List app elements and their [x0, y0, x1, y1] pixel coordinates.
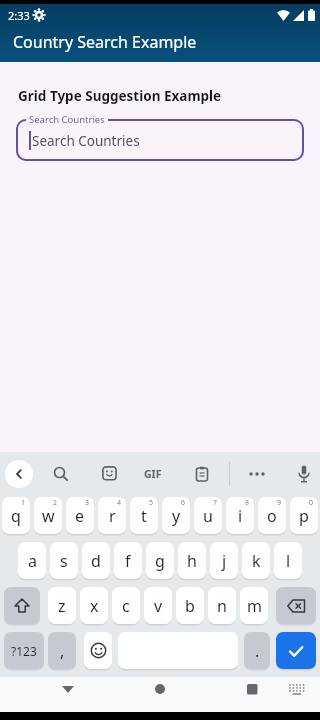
staticText: 0	[309, 498, 314, 508]
staticText: v	[154, 595, 163, 617]
staticText: f	[125, 550, 131, 572]
staticText: t	[141, 505, 147, 527]
staticText: 4	[117, 498, 122, 508]
button[interactable]: k	[242, 542, 270, 579]
staticText: ?123	[11, 643, 37, 659]
staticText: c	[122, 595, 130, 617]
staticText: h	[187, 550, 197, 572]
button[interactable]: o	[258, 497, 286, 534]
staticText: 3	[85, 498, 90, 508]
staticText: u	[203, 505, 213, 527]
staticText: y	[172, 505, 181, 527]
staticText: 1	[21, 498, 26, 508]
button[interactable]: y	[162, 497, 190, 534]
staticText: Search Countries	[32, 132, 140, 150]
button[interactable]: j	[210, 542, 238, 579]
button[interactable]	[118, 632, 238, 669]
button[interactable]: w	[34, 497, 62, 534]
button[interactable]	[84, 632, 112, 669]
staticText: b	[185, 595, 195, 617]
button[interactable]: r	[98, 497, 126, 534]
staticText: l	[286, 550, 291, 572]
button[interactable]: x	[80, 587, 108, 624]
staticText: r	[109, 505, 116, 527]
button[interactable]: n	[208, 587, 236, 624]
staticText: Grid Type Suggestion Example	[18, 87, 222, 105]
staticText: g	[155, 550, 165, 572]
button[interactable]: s	[50, 542, 78, 579]
staticText: m	[247, 595, 262, 617]
button[interactable]	[276, 587, 316, 624]
button[interactable]: q	[2, 497, 30, 534]
button[interactable]: v	[144, 587, 172, 624]
button[interactable]: t	[130, 497, 158, 534]
button[interactable]	[153, 682, 167, 696]
button[interactable]: ,	[48, 632, 76, 669]
button[interactable]	[245, 682, 259, 696]
button[interactable]: g	[146, 542, 174, 579]
staticText: ,	[60, 640, 65, 662]
staticText: 8	[245, 498, 250, 508]
staticText: a	[28, 550, 37, 572]
staticText: z	[58, 595, 66, 617]
staticText: j	[222, 550, 227, 572]
button[interactable]	[53, 466, 69, 482]
staticText: i	[238, 505, 243, 527]
staticText: o	[267, 505, 277, 527]
button[interactable]	[249, 466, 265, 482]
button[interactable]: i	[226, 497, 254, 534]
staticText: 7	[213, 498, 218, 508]
button[interactable]: b	[176, 587, 204, 624]
staticText: 2	[53, 498, 58, 508]
button[interactable]: e	[66, 497, 94, 534]
button[interactable]: p	[290, 497, 318, 534]
button[interactable]	[4, 587, 40, 624]
button[interactable]: u	[194, 497, 222, 534]
staticText: w	[42, 505, 55, 527]
staticText: Search Countries	[29, 113, 105, 126]
staticText: 5	[149, 498, 154, 508]
staticText: p	[299, 505, 309, 527]
button[interactable]: f	[114, 542, 142, 579]
button[interactable]	[102, 466, 117, 481]
button[interactable]: m	[240, 587, 268, 624]
staticText: 6	[181, 498, 186, 508]
staticText: n	[217, 595, 227, 617]
staticText: Country Search Example	[13, 31, 197, 53]
button[interactable]: l	[274, 542, 302, 579]
staticText: e	[75, 505, 85, 527]
button[interactable]	[61, 682, 75, 696]
staticText: q	[11, 505, 21, 527]
staticText: s	[60, 550, 68, 572]
button[interactable]: GIF	[144, 467, 162, 481]
button[interactable]: a	[18, 542, 46, 579]
staticText: .	[255, 640, 260, 662]
button[interactable]: h	[178, 542, 206, 579]
button[interactable]: c	[112, 587, 140, 624]
button[interactable]	[195, 466, 209, 482]
button[interactable]	[288, 682, 306, 696]
button[interactable]: .	[244, 632, 270, 669]
staticText: 2:33	[8, 8, 30, 23]
button[interactable]	[297, 465, 311, 483]
staticText: d	[91, 550, 101, 572]
staticText: k	[252, 550, 261, 572]
staticText: 9	[277, 498, 282, 508]
button[interactable]	[5, 460, 33, 488]
button[interactable]: Search Countries	[16, 119, 304, 161]
button[interactable]: d	[82, 542, 110, 579]
button[interactable]	[276, 632, 316, 669]
button[interactable]: z	[48, 587, 76, 624]
staticText: x	[90, 595, 99, 617]
button[interactable]: ?123	[4, 632, 44, 669]
